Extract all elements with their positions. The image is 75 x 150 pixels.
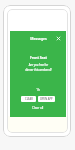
staticText: 1h (36, 88, 40, 92)
staticText: Are you free for dinner this weekend? (25, 63, 52, 72)
button[interactable]: CLEAR (21, 96, 36, 102)
staticText: Clear all (32, 106, 44, 110)
button[interactable]: OPEN APP (38, 96, 55, 102)
staticText: Front Seat (30, 55, 47, 59)
staticText: OPEN APP (40, 97, 53, 101)
staticText: CLEAR (25, 97, 33, 101)
button[interactable]: Clear all (30, 106, 46, 110)
staticText: Messages (30, 36, 47, 41)
button[interactable]: Close (55, 35, 62, 42)
